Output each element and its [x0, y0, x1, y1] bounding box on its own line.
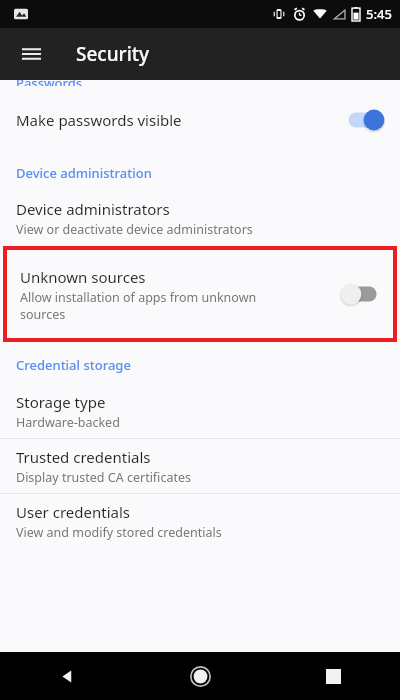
- staticText: View and modify stored credentials: [16, 524, 222, 541]
- staticText: Storage type: [16, 392, 106, 412]
- button[interactable]: Device administrators: [0, 190, 400, 246]
- button[interactable]: Toggle, off: [339, 281, 379, 307]
- staticText: Unknown sources: [20, 267, 146, 287]
- staticText: Credential storage: [16, 356, 131, 374]
- staticText: Security: [76, 41, 150, 67]
- button[interactable]: User credentials: [0, 494, 400, 548]
- button[interactable]: Recent apps: [267, 652, 400, 700]
- staticText: 5:45: [366, 5, 392, 23]
- staticText: Allow installation of apps from unknown …: [20, 289, 257, 322]
- staticText: Device administrators: [16, 199, 170, 219]
- button[interactable]: Back: [0, 652, 134, 700]
- button[interactable]: Trusted credentials: [0, 439, 400, 493]
- button[interactable]: Unknown sources: [7, 250, 393, 338]
- button[interactable]: Storage type: [0, 384, 400, 438]
- staticText: Hardware-backed: [16, 414, 120, 431]
- button[interactable]: Home: [134, 652, 267, 700]
- staticText: Display trusted CA certificates: [16, 469, 191, 486]
- staticText: User credentials: [16, 502, 130, 522]
- staticText: Make passwords visible: [16, 110, 182, 130]
- button[interactable]: Toggle, on: [346, 107, 386, 133]
- staticText: Trusted credentials: [16, 447, 151, 467]
- staticText: Device administration: [16, 164, 152, 182]
- staticText: Passwords: [16, 80, 83, 86]
- button[interactable]: Open navigation menu: [14, 37, 48, 71]
- staticText: View or deactivate device administrators: [16, 221, 253, 238]
- button[interactable]: Make passwords visible: [0, 92, 400, 148]
